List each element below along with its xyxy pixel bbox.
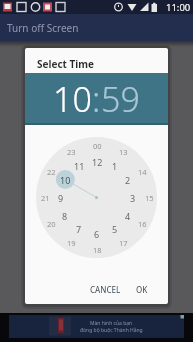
staticText: Select Time xyxy=(37,57,95,71)
staticText: đóng bộ buộc Thành Hằng xyxy=(80,327,143,334)
staticText: 22 xyxy=(47,167,56,177)
staticText: 13 xyxy=(119,147,128,157)
staticText: 59 xyxy=(101,76,140,122)
staticText: CANCEL xyxy=(90,284,121,295)
staticText: 8 xyxy=(62,210,68,222)
staticText: 23 xyxy=(67,147,76,157)
staticText: 1 xyxy=(112,160,118,172)
staticText: 18 xyxy=(93,245,102,255)
staticText: 19 xyxy=(67,238,76,248)
staticText: 2 xyxy=(125,174,131,186)
staticText: 10 xyxy=(60,174,71,186)
staticText: 6 xyxy=(94,228,100,240)
staticText: 5 xyxy=(112,223,118,235)
staticText: Màn hình của bạn xyxy=(90,320,133,327)
staticText: : xyxy=(92,76,101,122)
staticText: 11:00 xyxy=(166,1,191,14)
staticText: 11 xyxy=(74,160,85,172)
staticText: 15 xyxy=(145,193,154,203)
staticText: 14 xyxy=(138,167,147,177)
staticText: Turn off Screen xyxy=(7,21,79,35)
staticText: OK xyxy=(136,284,148,295)
staticText: 9 xyxy=(58,192,64,204)
staticText: 10 xyxy=(53,76,92,122)
staticText: 17 xyxy=(119,238,128,248)
staticText: 16 xyxy=(138,219,147,229)
staticText: 00 xyxy=(93,141,102,151)
staticText: 12 xyxy=(92,156,103,168)
button[interactable]: OK xyxy=(126,278,157,300)
staticText: 21 xyxy=(41,193,50,203)
staticText: 20 xyxy=(47,219,56,229)
staticText: 7 xyxy=(76,223,82,235)
staticText: 4 xyxy=(125,210,131,222)
button[interactable]: Màn hình của bạn xyxy=(9,315,184,338)
staticText: 3 xyxy=(130,192,136,204)
button[interactable]: CANCEL xyxy=(80,278,130,300)
